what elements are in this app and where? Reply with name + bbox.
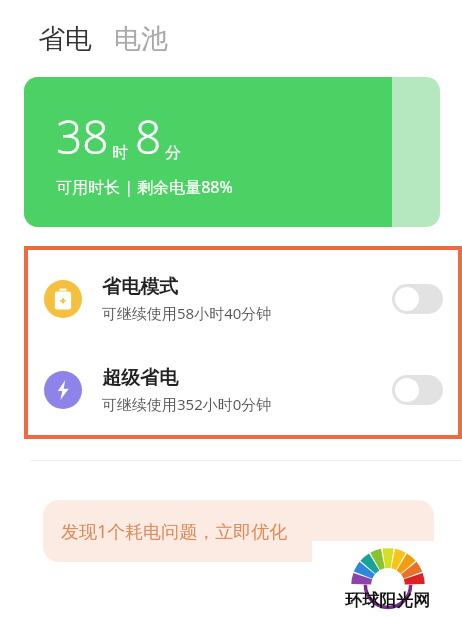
button[interactable]: Toggle 超级省电 xyxy=(392,375,443,405)
button[interactable]: 38 xyxy=(24,77,440,227)
button[interactable]: 电池 xyxy=(114,22,168,56)
staticText: 8 xyxy=(135,105,162,168)
staticText: 省电 xyxy=(38,22,92,56)
staticText: 超级省电 xyxy=(102,366,178,390)
button[interactable]: 省电 xyxy=(38,22,92,56)
staticText: 时 xyxy=(112,143,128,163)
staticText: 分 xyxy=(165,143,181,163)
staticText: 省电模式 xyxy=(102,275,178,299)
button[interactable]: 超级省电 xyxy=(24,359,462,421)
button[interactable]: 省电模式 xyxy=(24,268,462,330)
staticText: 可继续使用58小时40分钟 xyxy=(102,303,272,323)
staticText: 38 xyxy=(56,105,109,168)
button[interactable]: Toggle 省电模式 xyxy=(392,284,443,314)
staticText: 环球阳光网 xyxy=(345,590,430,611)
staticText: 可继续使用352小时0分钟 xyxy=(102,394,272,414)
staticText: 发现1个耗电问题，立即优化 xyxy=(61,519,288,544)
button[interactable]: 发现1个耗电问题，立即优化 xyxy=(43,500,434,562)
staticText: 电池 xyxy=(114,22,168,56)
staticText: 可用时长 | 剩余电量88% xyxy=(56,176,233,198)
